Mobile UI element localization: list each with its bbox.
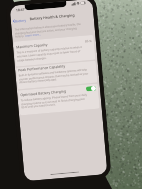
staticText: This is a measure of battery capacity re… [16,45,82,53]
staticText: 80 % until you need to use it. [21,102,56,108]
staticText: iPhone battery chemically ages. [19,77,57,83]
staticText: Maximum Capacity [16,42,48,50]
staticText: Peak Performance Capability [18,63,66,72]
button[interactable]: Maximum Capacity [16,38,92,49]
staticText: The information below is about your batt… [14,22,81,31]
staticText: history. [15,34,25,38]
staticText: charging routine so it can wait to finis… [21,97,85,105]
staticText: 18:47 [16,7,25,12]
button[interactable]: Optimised Battery Charging [86,86,96,92]
staticText: Battery [15,17,27,22]
staticText: Optimised Battery Charging [20,88,66,97]
staticText: Built-in dynamic software and hardware s… [18,67,87,76]
staticText: charging features that are active, and y… [15,26,78,35]
staticText: 86 % [85,39,92,43]
button[interactable]: Battery [11,16,28,24]
staticText: Battery Health & Charging [29,12,75,21]
button[interactable]: history. [15,32,41,38]
staticText: usage between charges. [17,56,47,61]
staticText: counter performance impacts that may be … [19,71,89,80]
staticText: was new. Lower capacity may result in fe… [17,49,81,57]
staticText: Learn more... [25,32,41,37]
staticText: To reduce battery ageing, iPhone learns … [21,92,88,101]
